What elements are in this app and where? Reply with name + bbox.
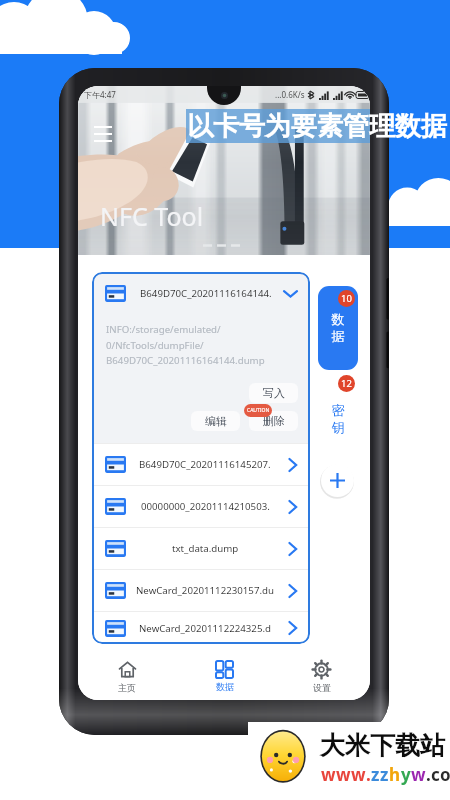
staticText: 删除 <box>263 414 285 428</box>
staticText: h <box>389 763 401 786</box>
other: Open <box>284 583 300 599</box>
staticText: 大米下载站 <box>320 730 445 761</box>
button[interactable]: 主页 <box>78 652 176 700</box>
staticText: NewCard_20201112230157.du <box>136 584 274 597</box>
staticText: z <box>380 763 389 786</box>
other: Open <box>284 457 300 473</box>
other: Open <box>284 541 300 557</box>
staticText: 00000000_20201114210503. <box>141 500 270 513</box>
button[interactable]: 数据 <box>176 652 273 700</box>
button[interactable]: NewCard_20201112224325.d <box>92 612 310 644</box>
staticText: NFC Tool <box>100 199 204 233</box>
staticText: 密钥 <box>331 402 345 436</box>
other: Open <box>284 620 300 636</box>
staticText: z <box>371 763 380 786</box>
staticText: w <box>351 763 366 786</box>
staticText: . <box>366 763 371 786</box>
staticText: o <box>440 763 450 786</box>
staticText: 以卡号为要素管理数据 <box>187 110 447 143</box>
button[interactable]: Menu <box>92 120 114 142</box>
button[interactable]: 设置 <box>273 652 370 700</box>
other: Open <box>284 499 300 515</box>
staticText: 数据 <box>331 311 345 345</box>
button[interactable]: B649D70C_20201116145207. <box>92 444 310 485</box>
staticText: 主页 <box>118 682 136 693</box>
staticText: 数据 <box>216 681 234 692</box>
staticText: txt_data.dump <box>172 542 239 555</box>
staticText: 编辑 <box>205 414 227 428</box>
button[interactable]: B649D70C_20201116164144. <box>92 272 310 443</box>
staticText: ...0.6K/s <box>275 89 305 100</box>
staticText: w <box>321 763 336 786</box>
staticText: y <box>401 763 411 786</box>
button[interactable]: 密钥 <box>318 383 358 455</box>
staticText: CAUTION <box>247 407 270 414</box>
staticText: w <box>411 763 426 786</box>
staticText: INFO:/storage/emulated/ 0/NfcTools/dumpF… <box>106 323 265 367</box>
button[interactable]: NewCard_20201112230157.du <box>92 570 310 611</box>
staticText: 设置 <box>313 682 331 693</box>
button[interactable]: 删除 <box>249 411 298 431</box>
staticText: NewCard_20201112224325.d <box>139 622 272 635</box>
staticText: B649D70C_20201116164144. <box>140 287 272 300</box>
staticText: 10 <box>341 292 352 305</box>
staticText: . <box>426 763 431 786</box>
button[interactable]: Add <box>321 464 354 497</box>
staticText: 下午4:47 <box>84 89 116 100</box>
button[interactable]: 写入 <box>249 383 298 403</box>
button[interactable]: 数据 <box>318 286 358 370</box>
staticText: w <box>336 763 351 786</box>
staticText: 写入 <box>263 386 285 400</box>
other: Collapse <box>282 285 299 302</box>
button[interactable]: 编辑 <box>191 411 240 431</box>
staticText: 12 <box>341 377 352 390</box>
button[interactable]: 00000000_20201114210503. <box>92 486 310 527</box>
staticText: c <box>431 763 440 786</box>
button[interactable]: txt_data.dump <box>92 528 310 569</box>
staticText: B649D70C_20201116145207. <box>139 458 271 471</box>
